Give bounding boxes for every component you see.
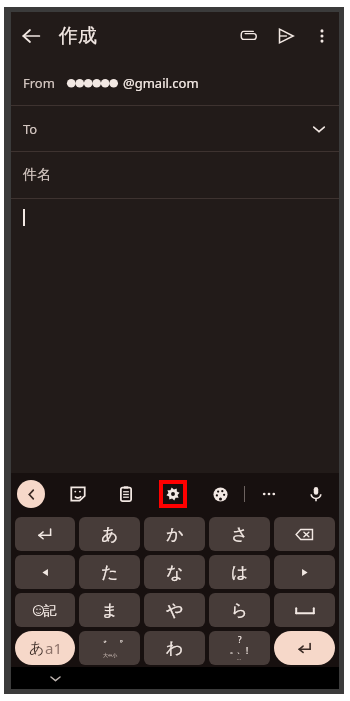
button[interactable]: Move cursor right [274, 555, 335, 589]
staticText: ゜ [112, 638, 124, 652]
button[interactable]: わ [144, 631, 205, 665]
button[interactable]: From [11, 60, 339, 105]
button[interactable]: Attach file [229, 17, 267, 55]
staticText: な [166, 562, 184, 583]
staticText: 。 [230, 646, 237, 655]
staticText: To [23, 120, 38, 138]
button[interactable]: More keyboard options [254, 479, 284, 509]
button[interactable]: Voice input [301, 479, 331, 509]
staticText: ゛ [96, 638, 108, 652]
staticText: ! [246, 645, 249, 656]
button[interactable]: Stickers [63, 479, 93, 509]
button[interactable]: More options [305, 19, 339, 53]
staticText: や [166, 600, 184, 621]
button[interactable]: Send [267, 17, 305, 55]
staticText: 、 [237, 646, 244, 655]
staticText: ··· [237, 656, 242, 663]
button[interactable]: か [144, 517, 205, 551]
button[interactable]: Space [274, 593, 335, 627]
staticText: か [166, 524, 184, 545]
button[interactable]: さ [209, 517, 270, 551]
button[interactable]: Backspace [274, 517, 335, 551]
button[interactable]: Settings [158, 479, 188, 509]
staticText: 大⇔小 [103, 652, 118, 658]
staticText: 記 [44, 602, 57, 618]
button[interactable]: Undo [15, 517, 75, 551]
staticText: ま [101, 600, 119, 621]
staticText: 作成 [59, 24, 97, 48]
staticText: ? [238, 634, 242, 645]
button[interactable]: Enter [274, 631, 335, 665]
staticText: From [23, 74, 55, 92]
button[interactable]: Back [11, 16, 51, 56]
staticText: は [231, 562, 249, 583]
button[interactable]: Punctuation [209, 631, 270, 665]
staticText: あ [29, 639, 45, 658]
button[interactable]: Hide keyboard [46, 669, 64, 687]
staticText: ら [231, 600, 249, 621]
staticText: さ [231, 524, 249, 545]
staticText: あ [101, 524, 119, 545]
button[interactable]: ま [79, 593, 140, 627]
button[interactable]: や [144, 593, 205, 627]
button[interactable]: Move cursor left [15, 555, 75, 589]
button[interactable]: た [79, 555, 140, 589]
staticText: わ [166, 638, 184, 659]
button[interactable]: な [144, 555, 205, 589]
staticText: 件名 [23, 166, 51, 184]
button[interactable] [11, 199, 339, 473]
button[interactable]: ら [209, 593, 270, 627]
button[interactable]: Clipboard [111, 479, 141, 509]
button[interactable]: Collapse toolbar [17, 480, 45, 508]
staticText: た [101, 562, 119, 583]
button[interactable]: あ [79, 517, 140, 551]
button[interactable]: 記 [15, 593, 75, 627]
button[interactable]: あ [15, 631, 75, 665]
button[interactable]: To [11, 106, 339, 151]
button[interactable]: Dakuten and size toggle [79, 631, 140, 665]
staticText: a1 [45, 638, 62, 658]
button[interactable]: は [209, 555, 270, 589]
button[interactable]: 件名 [11, 152, 339, 198]
staticText: @gmail.com [123, 74, 199, 92]
button[interactable]: Themes [205, 479, 235, 509]
